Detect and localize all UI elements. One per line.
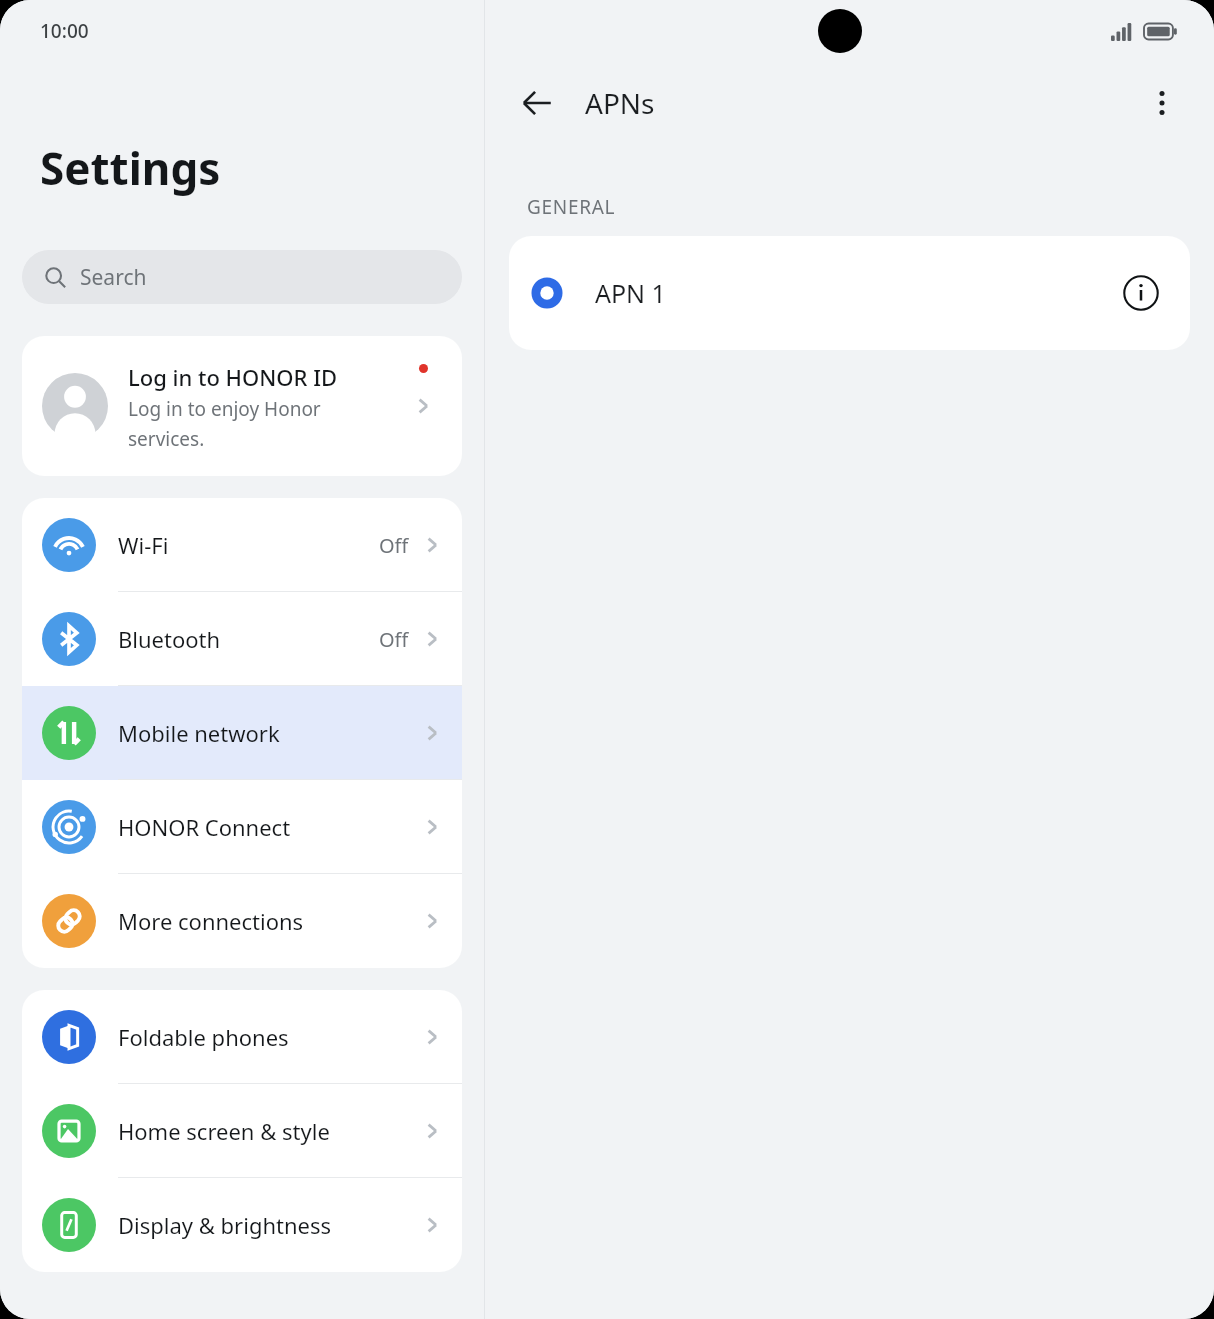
button[interactable]: Bluetooth [22,592,462,686]
staticText: Foldable phones [118,1022,422,1052]
staticText: Search [80,263,147,292]
staticText: Off [379,532,409,559]
staticText: Bluetooth [118,624,379,654]
staticText: Log in to HONOR ID [128,362,338,392]
staticText: Log in to enjoy Honor services. [128,396,400,451]
button[interactable]: Home screen & style [22,1084,462,1178]
staticText: Off [379,626,409,653]
staticText: APN 1 [595,276,666,310]
button[interactable]: Mobile network [22,686,462,780]
staticText: Mobile network [118,718,422,748]
button[interactable]: HONOR Connect [22,780,462,874]
button[interactable]: More connections [22,874,462,968]
staticText: Wi-Fi [118,530,379,560]
button[interactable]: APN 1 [509,236,1190,350]
staticText: HONOR Connect [118,812,422,842]
staticText: APNs [585,84,655,122]
button[interactable]: APN details [1118,270,1164,316]
button[interactable]: Back [509,75,565,131]
staticText: More connections [118,906,422,936]
staticText: Home screen & style [118,1116,422,1146]
button[interactable]: Display & brightness [22,1178,462,1272]
button[interactable]: Search [22,250,462,304]
button[interactable]: More options [1134,75,1190,131]
button[interactable]: Wi-Fi [22,498,462,592]
staticText: Display & brightness [118,1210,422,1240]
button[interactable]: Log in to HONOR ID [22,336,462,476]
staticText: 10:00 [40,18,89,44]
staticText: Settings [40,138,221,198]
staticText: GENERAL [527,194,616,220]
button[interactable]: Foldable phones [22,990,462,1084]
